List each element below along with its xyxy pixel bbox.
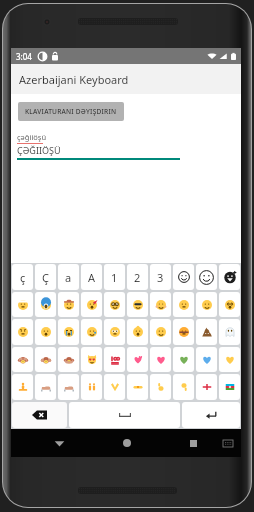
button[interactable]: Emoji — [127, 292, 148, 317]
button[interactable]: Emoji — [12, 292, 33, 317]
button[interactable]: Emoji — [127, 319, 148, 345]
button[interactable]: Emoji — [35, 319, 56, 345]
button[interactable]: Emoji — [150, 292, 171, 317]
staticText: KLAVIATURANI DƏYIŞDIRIN — [25, 107, 117, 116]
button[interactable]: Ç — [35, 264, 56, 290]
button[interactable]: Emoji — [81, 292, 102, 317]
button[interactable]: Emoji — [81, 319, 102, 345]
button[interactable]: KLAVIATURANI DƏYIŞDIRIN — [18, 102, 124, 121]
button[interactable]: 2 — [127, 264, 148, 290]
button[interactable]: Emoji — [219, 374, 240, 400]
button[interactable]: 3 — [150, 264, 171, 290]
staticText: a — [65, 270, 72, 285]
button[interactable]: Emoji — [173, 347, 194, 372]
button[interactable]: Home — [93, 429, 160, 457]
button[interactable]: Emoji — [35, 374, 56, 400]
button[interactable]: Emotions — [196, 264, 217, 290]
button[interactable]: Emoji — [35, 292, 56, 317]
button[interactable]: Emoji — [150, 319, 171, 345]
staticText: 3 — [157, 270, 164, 285]
staticText: A — [88, 270, 96, 285]
button[interactable]: a — [58, 264, 79, 290]
staticText: 3:04 — [16, 51, 32, 62]
button[interactable]: Emoji — [196, 292, 217, 317]
staticText: 2 — [134, 270, 141, 285]
button[interactable]: Stickers — [219, 264, 240, 290]
button[interactable]: Emoji — [104, 374, 125, 400]
staticText: ç — [20, 270, 26, 285]
button[interactable]: Emoji — [219, 319, 240, 345]
button[interactable]: Emoji — [58, 374, 79, 400]
button[interactable]: Emoji — [173, 374, 194, 400]
button[interactable]: Emoji — [12, 374, 33, 400]
staticText: Ç — [42, 270, 49, 285]
button[interactable]: Emoji — [150, 347, 171, 372]
staticText: çəğiiöşü — [17, 132, 47, 142]
button[interactable]: A — [81, 264, 102, 290]
button[interactable]: Emoji — [104, 292, 125, 317]
button[interactable]: Emoji — [12, 319, 33, 345]
button[interactable]: Emoji — [173, 292, 194, 317]
button[interactable]: Smileys — [173, 264, 194, 290]
button[interactable]: ç — [12, 264, 33, 290]
button[interactable]: Emoji — [219, 292, 240, 317]
button[interactable]: Recents — [160, 429, 227, 457]
button[interactable]: Emoji — [58, 292, 79, 317]
button[interactable]: Space — [69, 402, 180, 428]
button[interactable]: Emoji — [173, 319, 194, 345]
button[interactable]: Emoji — [127, 374, 148, 400]
button[interactable]: Emoji — [104, 347, 125, 372]
button[interactable]: Switch keyboard — [215, 429, 241, 457]
button[interactable]: Emoji — [104, 319, 125, 345]
button[interactable]: Backspace — [12, 402, 67, 428]
button[interactable]: 1 — [104, 264, 125, 290]
button[interactable]: Emoji — [150, 374, 171, 400]
button[interactable]: Emoji — [12, 347, 33, 372]
button[interactable]: Emoji — [219, 347, 240, 372]
button[interactable]: Emoji — [196, 374, 217, 400]
staticText: Azerbaijani Keyboard — [19, 72, 129, 87]
button[interactable]: Enter — [182, 402, 240, 428]
button[interactable]: Emoji — [81, 374, 102, 400]
staticText: ÇƏĞIIÖŞÜ — [17, 144, 61, 156]
button[interactable]: Emoji — [127, 347, 148, 372]
button[interactable]: Emoji — [58, 347, 79, 372]
button[interactable]: Emoji — [196, 319, 217, 345]
button[interactable]: Emoji — [196, 347, 217, 372]
button[interactable]: Back — [25, 429, 93, 457]
button[interactable]: Emoji — [81, 347, 102, 372]
button[interactable]: Emoji — [58, 319, 79, 345]
staticText: 1 — [111, 270, 118, 285]
button[interactable]: Emoji — [35, 347, 56, 372]
